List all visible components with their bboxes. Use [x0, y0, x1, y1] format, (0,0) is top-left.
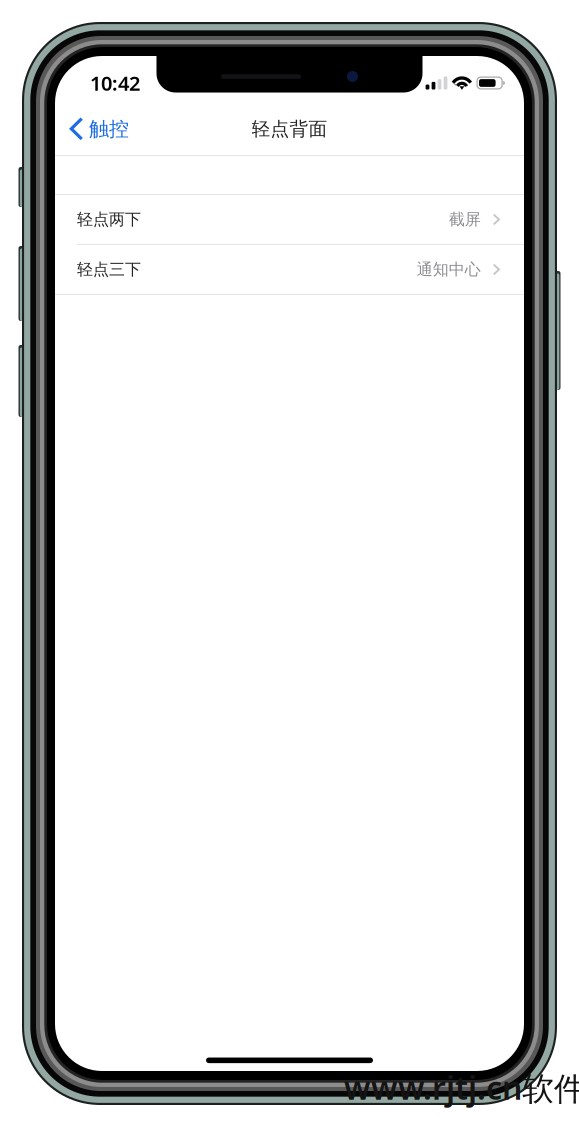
staticText: 触控 — [89, 117, 129, 141]
button[interactable]: 轻点两下 — [55, 195, 524, 244]
staticText: 轻点背面 — [251, 117, 327, 140]
staticText: 截屏 — [449, 210, 481, 229]
staticText: 轻点两下 — [77, 210, 141, 229]
staticText: 通知中心 — [417, 260, 481, 279]
button[interactable]: 触控 — [55, 103, 524, 155]
staticText: 轻点三下 — [77, 260, 141, 279]
staticText: www.rjtj.cn软件推荐网 — [344, 1066, 579, 1109]
staticText: 10:42 — [90, 70, 140, 96]
button[interactable]: 轻点三下 — [55, 245, 524, 294]
